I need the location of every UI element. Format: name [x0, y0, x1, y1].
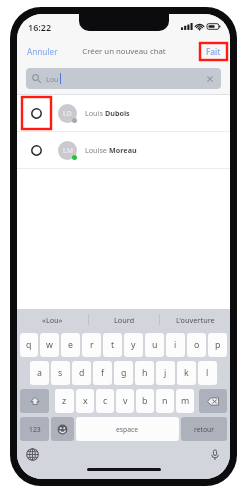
button[interactable]: d	[72, 361, 91, 385]
button[interactable]: n	[156, 389, 174, 413]
staticText: Louis	[85, 108, 105, 118]
staticText: LD	[63, 109, 72, 118]
staticText: c	[103, 395, 108, 407]
button[interactable]: u	[145, 333, 164, 357]
staticText: w	[46, 339, 53, 351]
button[interactable]: b	[136, 389, 154, 413]
staticText: LM	[63, 146, 73, 155]
staticText: l	[206, 367, 209, 379]
button[interactable]: Changer de clavier	[24, 446, 41, 463]
staticText: «Lou»	[42, 315, 63, 325]
staticText: Moreau	[109, 145, 137, 155]
staticText: s	[58, 367, 63, 379]
button[interactable]: o	[187, 333, 206, 357]
button[interactable]: p	[208, 333, 227, 357]
button[interactable]: w	[40, 333, 59, 357]
staticText: m	[181, 395, 190, 407]
staticText: d	[79, 367, 85, 379]
staticText: Créer un nouveau chat	[82, 46, 166, 57]
staticText: g	[121, 367, 127, 379]
button[interactable]: retour	[181, 417, 227, 441]
staticText: Lou	[46, 74, 59, 84]
staticText: Annuler	[27, 46, 58, 57]
staticText: Fait	[206, 46, 221, 57]
button[interactable]: Annuler	[17, 43, 68, 60]
button[interactable]: s	[51, 361, 70, 385]
button[interactable]: «Lou»	[17, 309, 88, 330]
staticText: a	[37, 367, 42, 379]
button[interactable]: z	[55, 389, 74, 413]
button[interactable]: Lourd	[89, 309, 159, 330]
button[interactable]: Majuscule	[20, 389, 49, 413]
button[interactable]: r	[82, 333, 101, 357]
staticText: t	[111, 339, 115, 351]
staticText: o	[194, 339, 200, 351]
button[interactable]: v	[116, 389, 134, 413]
button[interactable]: x	[76, 389, 94, 413]
button[interactable]: t	[103, 333, 122, 357]
staticText: Dubois	[105, 108, 130, 118]
staticText: x	[83, 395, 88, 407]
button[interactable]: Dictée	[206, 446, 223, 463]
staticText: h	[142, 367, 148, 379]
staticText: e	[68, 339, 73, 351]
staticText: 16:22	[28, 21, 52, 33]
button[interactable]: q	[20, 333, 38, 357]
button[interactable]: Emoji	[51, 417, 74, 441]
staticText: q	[26, 339, 32, 351]
button[interactable]: i	[166, 333, 185, 357]
button[interactable]: Fait	[200, 43, 227, 60]
staticText: j	[164, 367, 167, 379]
button[interactable]: c	[96, 389, 114, 413]
button[interactable]: a	[30, 361, 49, 385]
staticText: L'ouverture	[176, 315, 215, 325]
staticText: p	[215, 339, 221, 351]
button[interactable]: f	[93, 361, 112, 385]
staticText: retour	[194, 425, 215, 434]
staticText: r	[90, 339, 94, 351]
button[interactable]: espace	[76, 417, 179, 441]
staticText: 123	[29, 425, 41, 434]
staticText: n	[162, 395, 168, 407]
staticText: v	[123, 395, 128, 407]
button[interactable]: L'ouverture	[160, 309, 230, 330]
button[interactable]: l	[198, 361, 217, 385]
button[interactable]: k	[177, 361, 196, 385]
staticText: b	[142, 395, 148, 407]
staticText: f	[101, 367, 105, 379]
button[interactable]: Lou	[26, 68, 221, 89]
button[interactable]: g	[114, 361, 133, 385]
button[interactable]: Effacer	[205, 74, 215, 84]
staticText: u	[152, 339, 158, 351]
button[interactable]: LD	[17, 95, 230, 131]
button[interactable]: Retour arrière	[199, 389, 227, 413]
button[interactable]: m	[176, 389, 194, 413]
button[interactable]: h	[135, 361, 154, 385]
staticText: Lourd	[114, 315, 135, 325]
staticText: y	[131, 339, 136, 351]
button[interactable]: 123	[20, 417, 49, 441]
staticText: i	[174, 339, 177, 351]
button[interactable]: y	[124, 333, 143, 357]
button[interactable]: e	[61, 333, 80, 357]
staticText: espace	[116, 425, 139, 434]
button[interactable]: j	[156, 361, 175, 385]
button[interactable]: LM	[17, 132, 230, 168]
staticText: Louise	[85, 145, 109, 155]
staticText: z	[62, 395, 67, 407]
staticText: k	[184, 367, 189, 379]
